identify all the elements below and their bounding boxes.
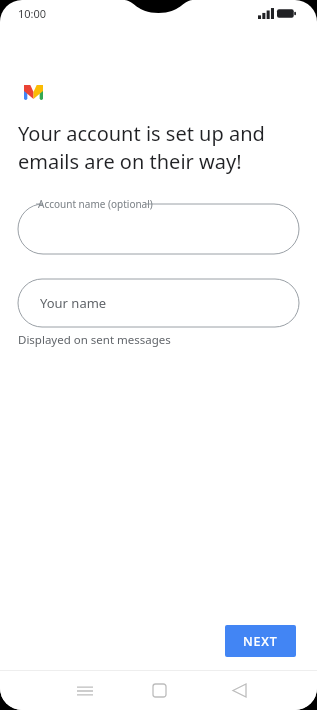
button[interactable]: Back [219, 671, 259, 710]
staticText: Your name [40, 294, 107, 312]
staticText: Account name (optional) [38, 197, 153, 211]
button[interactable]: Recent apps [65, 671, 105, 710]
staticText: Displayed on sent messages [18, 332, 171, 348]
staticText: 10:00 [18, 6, 47, 21]
staticText: NEXT [243, 633, 278, 650]
staticText: Your account is set up and emails are on… [18, 120, 265, 175]
button[interactable]: Home [139, 671, 179, 710]
button[interactable]: Your name [18, 279, 299, 327]
button[interactable]: Account name (optional) [18, 194, 299, 254]
button[interactable]: NEXT [225, 625, 296, 657]
